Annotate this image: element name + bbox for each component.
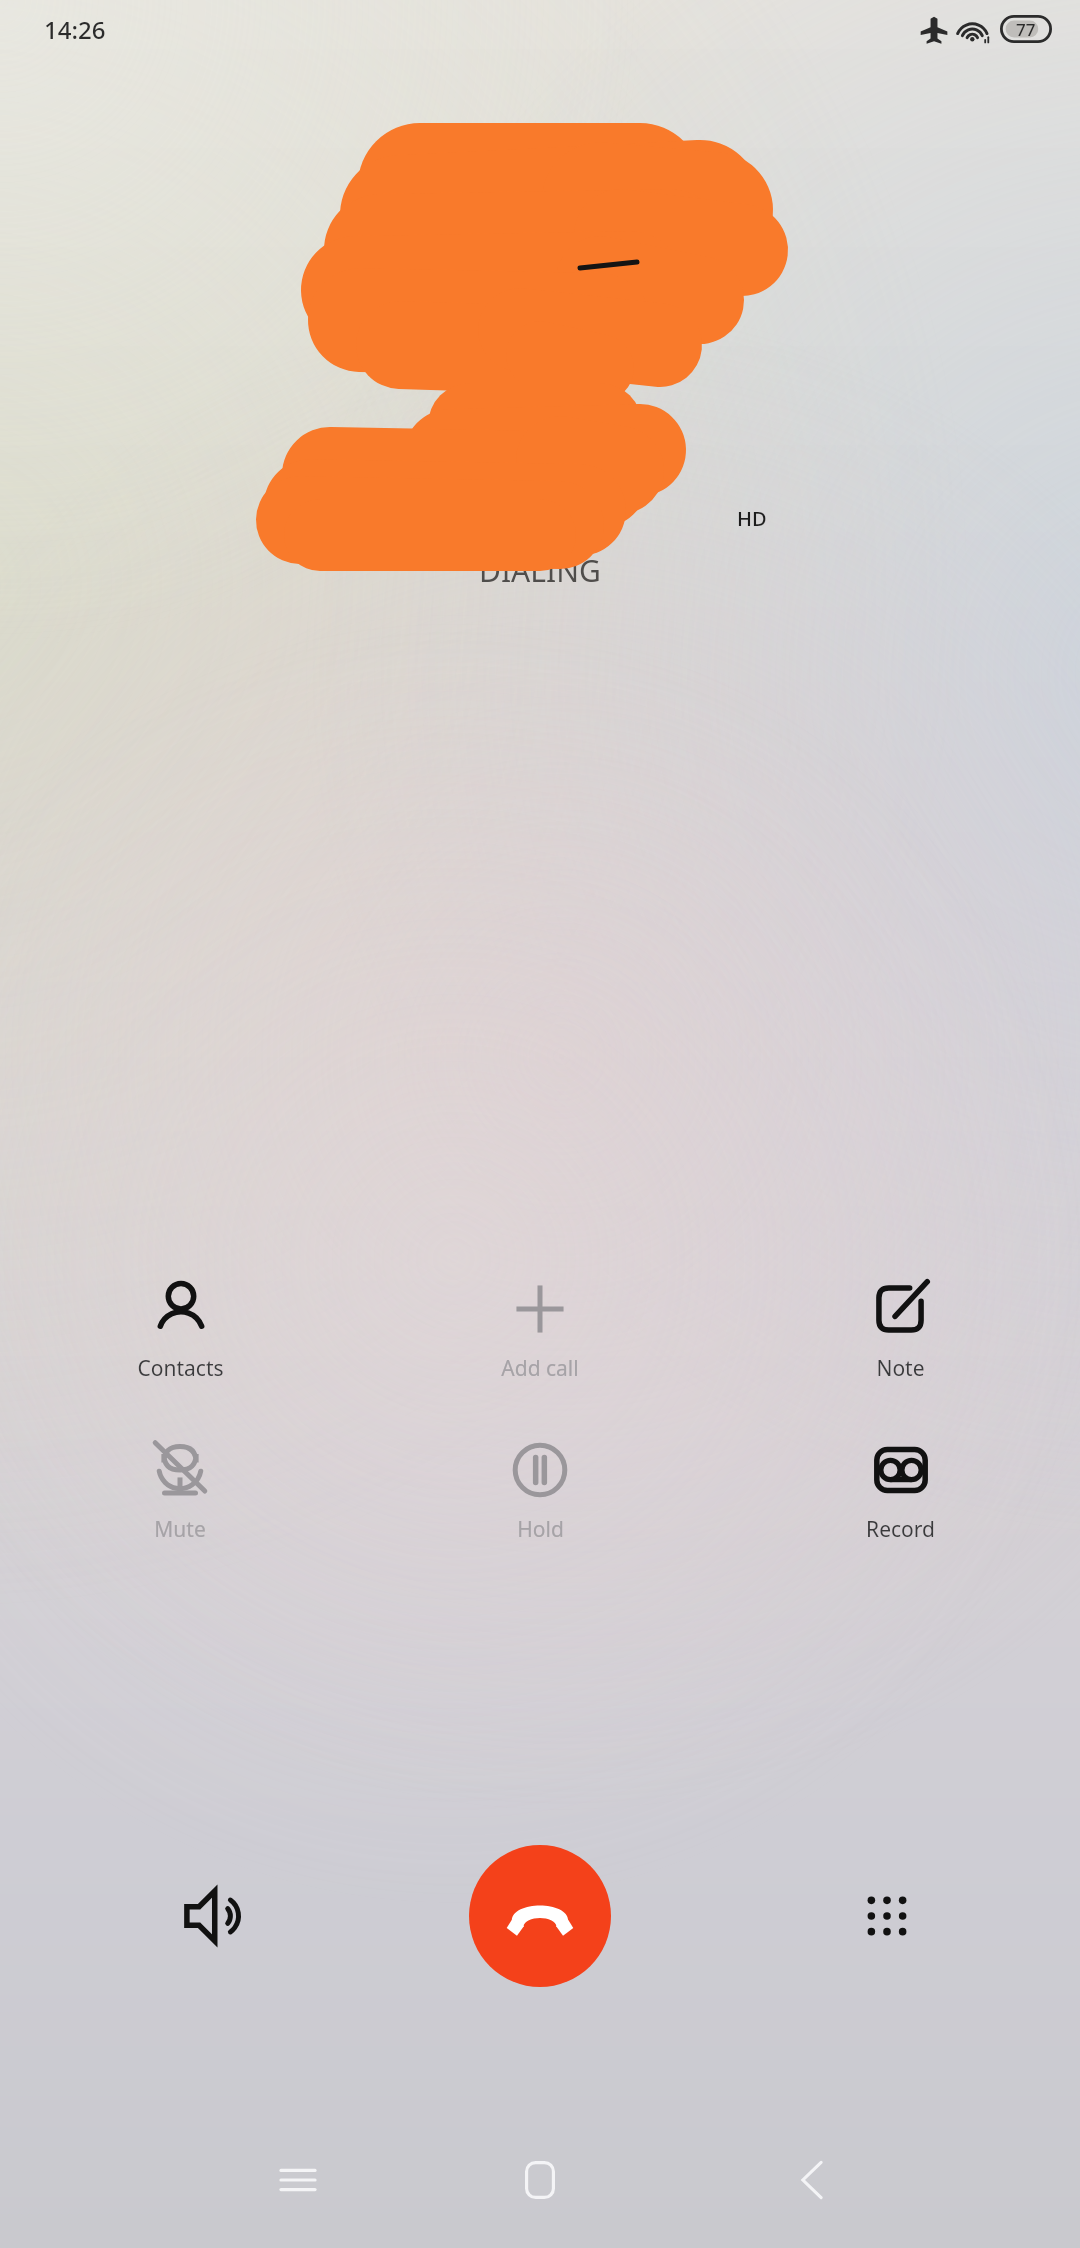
- staticText: Mute: [154, 1515, 206, 1544]
- button[interactable]: Dialpad: [852, 1881, 922, 1951]
- staticText: Add call: [501, 1354, 579, 1383]
- staticText: Hold: [517, 1515, 564, 1544]
- staticText: DIALING: [479, 550, 601, 591]
- staticText: Record: [866, 1515, 935, 1544]
- staticText: 14:26: [44, 13, 106, 46]
- staticText: Contacts: [137, 1354, 224, 1383]
- button[interactable]: Back: [782, 2150, 842, 2210]
- button[interactable]: Add call: [501, 1278, 579, 1383]
- button[interactable]: Mute: [149, 1439, 211, 1544]
- button[interactable]: Contacts: [137, 1278, 224, 1383]
- button[interactable]: End call: [469, 1845, 611, 1987]
- staticText: HD: [737, 505, 767, 532]
- button[interactable]: Record: [866, 1439, 935, 1544]
- button[interactable]: Speaker: [178, 1881, 248, 1951]
- staticText: Note: [876, 1354, 925, 1383]
- button[interactable]: Note: [869, 1278, 931, 1383]
- staticText: 77: [1016, 18, 1036, 41]
- button[interactable]: Home: [510, 2150, 570, 2210]
- button[interactable]: Hold: [509, 1439, 571, 1544]
- button[interactable]: Recents: [268, 2150, 328, 2210]
